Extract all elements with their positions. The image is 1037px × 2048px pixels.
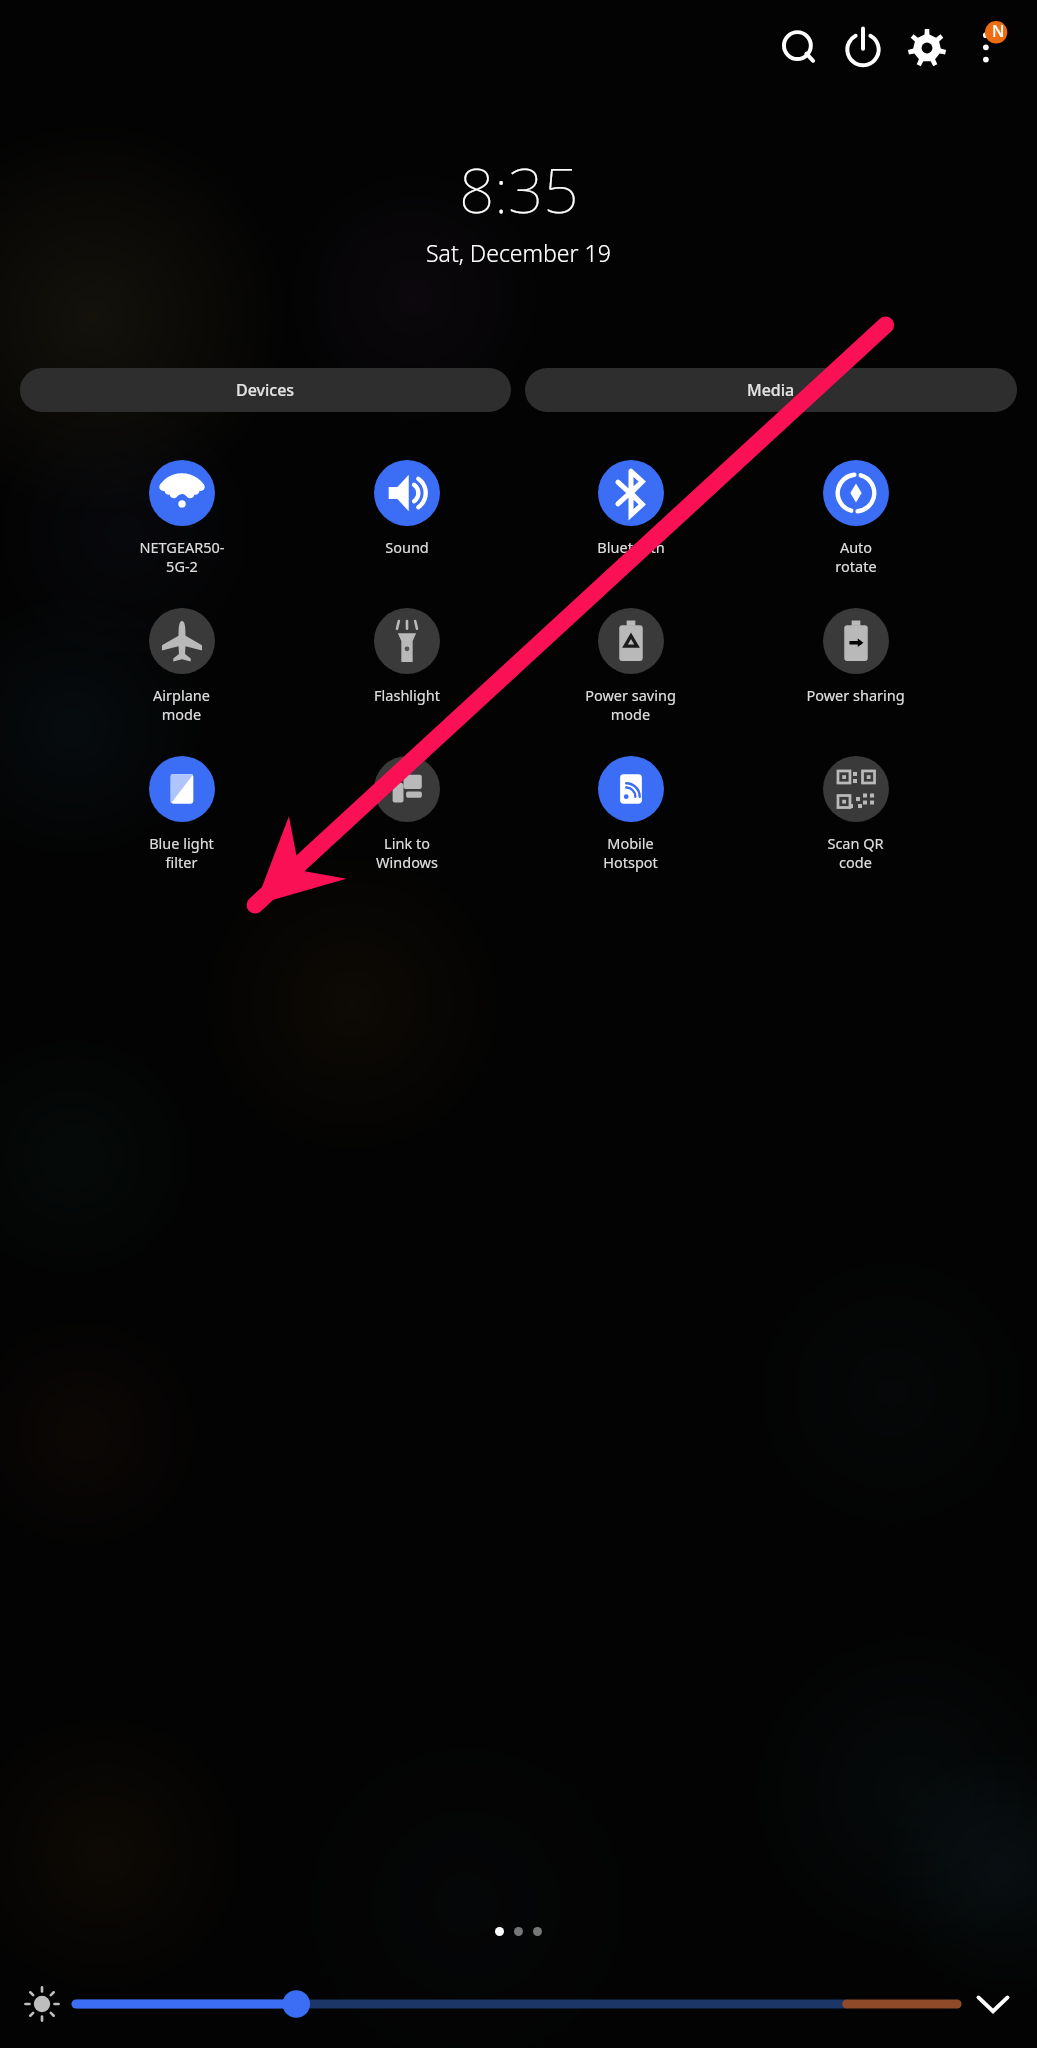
- button[interactable]: Brightness slider: [76, 1981, 957, 2027]
- staticText: N: [992, 20, 1005, 42]
- button[interactable]: Sound: [349, 460, 464, 557]
- button[interactable]: Mobile Hotspot: [573, 756, 688, 872]
- staticText: 8:35: [459, 147, 579, 231]
- button[interactable]: Blue light filter: [124, 756, 239, 872]
- staticText: Flashlight: [374, 685, 440, 705]
- staticText: Media: [747, 379, 795, 401]
- button[interactable]: Power saving mode: [573, 608, 688, 724]
- staticText: Bluetooth: [597, 537, 665, 557]
- button[interactable]: Wi-Fi: [124, 460, 239, 576]
- button[interactable]: Brightness: [18, 1980, 66, 2028]
- button[interactable]: Media: [525, 368, 1017, 412]
- button[interactable]: Power sharing: [798, 608, 913, 705]
- staticText: Airplane mode: [153, 685, 210, 724]
- staticText: Scan QR code: [827, 833, 884, 872]
- button[interactable]: Power: [831, 16, 895, 80]
- button[interactable]: Bluetooth: [573, 460, 688, 557]
- button[interactable]: Settings: [895, 16, 959, 80]
- staticText: NETGEAR50- 5G-2: [139, 537, 225, 576]
- staticText: Link to Windows: [376, 833, 438, 872]
- staticText: Mobile Hotspot: [603, 833, 658, 872]
- staticText: Power sharing: [806, 685, 905, 705]
- staticText: Sat, December 19: [426, 237, 611, 268]
- staticText: Power saving mode: [585, 685, 676, 724]
- staticText: Sound: [385, 537, 429, 557]
- button[interactable]: Airplane mode: [124, 608, 239, 724]
- button[interactable]: Devices: [20, 368, 511, 412]
- button[interactable]: Scan QR code: [798, 756, 913, 872]
- button[interactable]: Search: [767, 16, 831, 80]
- button[interactable]: Auto rotate: [798, 460, 913, 576]
- staticText: Blue light filter: [149, 833, 214, 872]
- button[interactable]: Flashlight: [349, 608, 464, 705]
- staticText: Devices: [236, 379, 295, 401]
- button[interactable]: Link to Windows: [349, 756, 464, 872]
- button[interactable]: More options: [959, 16, 1023, 80]
- button[interactable]: Expand: [967, 1978, 1019, 2030]
- staticText: Auto rotate: [835, 537, 877, 576]
